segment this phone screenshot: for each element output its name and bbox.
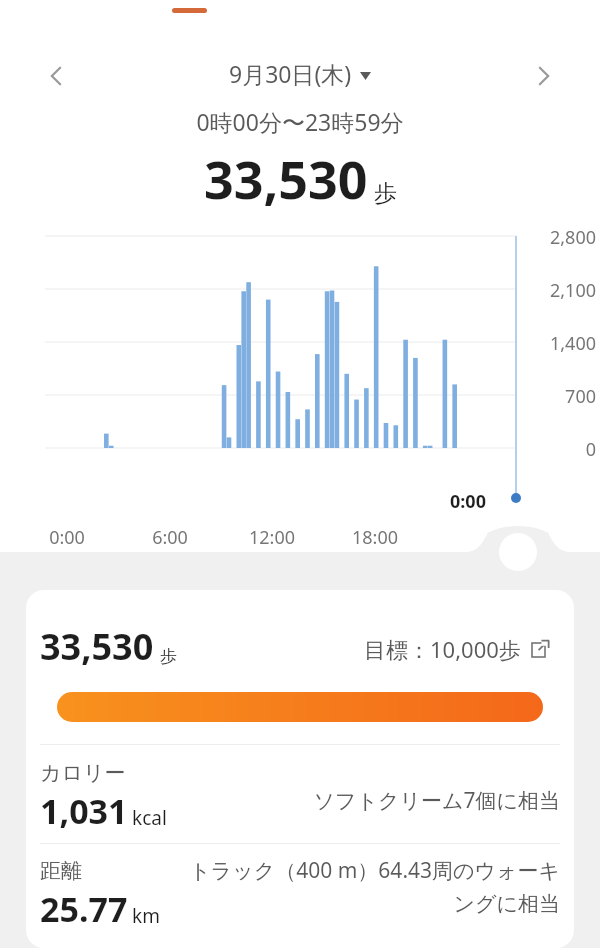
button[interactable]: 9月30日(木) bbox=[229, 58, 371, 89]
staticText: カロリー bbox=[40, 760, 126, 786]
staticText: 18:00 bbox=[335, 525, 415, 550]
staticText: トラック（400 m）64.43周のウォーキングに相当 bbox=[186, 856, 560, 917]
staticText: 2,100 bbox=[524, 278, 596, 303]
staticText: 25.77 bbox=[40, 886, 128, 932]
button[interactable]: Previous day bbox=[28, 48, 84, 104]
button[interactable] bbox=[172, 8, 207, 13]
staticText: 歩 bbox=[160, 646, 177, 667]
staticText: 1,400 bbox=[524, 331, 596, 356]
staticText: 目標：10,000歩 bbox=[364, 634, 521, 664]
staticText: 0:00 bbox=[450, 489, 486, 514]
staticText: 1,031 bbox=[40, 788, 128, 834]
button[interactable]: Add bbox=[496, 530, 540, 574]
staticText: 0:00 bbox=[27, 525, 107, 550]
staticText: 2,800 bbox=[524, 225, 596, 250]
staticText: 700 bbox=[524, 384, 596, 409]
staticText: 12:00 bbox=[232, 525, 312, 550]
staticText: 9月30日(木) bbox=[229, 58, 352, 89]
staticText: km bbox=[132, 903, 160, 929]
staticText: 距離 bbox=[40, 858, 82, 884]
button[interactable]: Next day bbox=[516, 48, 572, 104]
staticText: kcal bbox=[132, 805, 167, 831]
staticText: 33,530 bbox=[204, 143, 368, 214]
staticText: 0時00分〜23時59分 bbox=[196, 106, 404, 137]
staticText: 33,530 bbox=[40, 622, 154, 671]
staticText: ソフトクリーム7個に相当 bbox=[294, 786, 560, 815]
staticText: 歩 bbox=[374, 179, 397, 208]
staticText: 6:00 bbox=[130, 525, 210, 550]
button[interactable]: 目標：10,000歩 bbox=[364, 634, 549, 664]
staticText: 0 bbox=[524, 437, 596, 462]
